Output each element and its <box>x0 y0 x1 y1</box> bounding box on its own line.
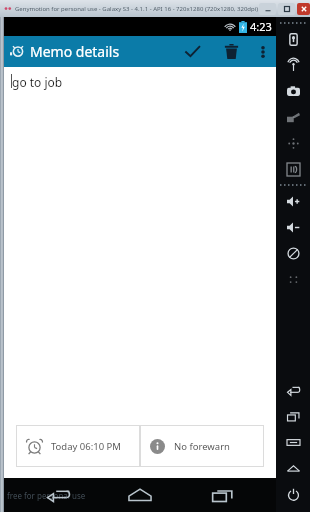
staticText: Today 06:10 PM <box>51 440 121 453</box>
button[interactable]: Volume down <box>276 214 310 240</box>
button[interactable]: Minimize <box>259 3 276 15</box>
button[interactable]: Maximize <box>278 3 295 15</box>
button[interactable]: Close <box>297 3 310 15</box>
button[interactable]: Camera <box>276 78 310 104</box>
button[interactable]: App icon <box>4 36 30 67</box>
staticText: 4:23 <box>250 19 272 34</box>
button[interactable]: Rotate <box>276 240 310 266</box>
button[interactable]: Delete <box>212 36 250 67</box>
staticText: go to job <box>12 74 63 90</box>
button[interactable]: Home <box>111 478 169 512</box>
button[interactable]: Battery <box>276 26 310 52</box>
button[interactable]: go to job <box>4 67 276 425</box>
button[interactable]: Network <box>276 104 310 130</box>
button[interactable]: No forewarn <box>140 425 264 467</box>
button[interactable]: Today 06:10 PM <box>16 425 140 467</box>
staticText: free for personal use <box>7 490 86 501</box>
staticText: Genymotion for personal use - Galaxy S3 … <box>15 5 259 13</box>
button[interactable]: Sensors <box>276 130 310 156</box>
staticText: Memo details <box>30 42 120 61</box>
button[interactable]: Screenshot <box>276 266 310 292</box>
staticText: No forewarn <box>174 440 230 453</box>
button[interactable]: Recents <box>276 403 310 429</box>
button[interactable]: More options <box>250 36 276 67</box>
button[interactable]: GPS <box>276 52 310 78</box>
button[interactable]: Power <box>276 481 310 507</box>
button[interactable]: Menu <box>276 429 310 455</box>
button[interactable]: Back <box>276 377 310 403</box>
button[interactable]: Home <box>276 455 310 481</box>
button[interactable]: Back <box>29 478 87 512</box>
button[interactable]: Recents <box>194 478 252 512</box>
button[interactable]: Save <box>172 36 212 67</box>
button[interactable]: Volume up <box>276 188 310 214</box>
button[interactable]: Identifiers <box>276 156 310 182</box>
